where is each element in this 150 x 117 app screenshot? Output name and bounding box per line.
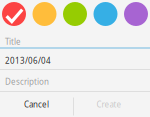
button[interactable]: Blue: [93, 2, 117, 26]
button[interactable]: Orange: [32, 2, 56, 26]
staticText: Cancel: [24, 99, 49, 110]
staticText: 2013/06/04: [5, 55, 51, 66]
button[interactable]: Cancel: [0, 92, 73, 117]
button[interactable]: Title: [0, 26, 150, 49]
button[interactable]: Description: [0, 70, 150, 92]
button[interactable]: Purple: [124, 2, 148, 26]
button[interactable]: Green: [63, 2, 87, 26]
button[interactable]: Red: [2, 2, 26, 26]
staticText: Create: [96, 99, 121, 110]
button[interactable]: 2013/06/04: [0, 49, 150, 70]
staticText: Title: [5, 36, 21, 47]
button[interactable]: Create: [74, 92, 144, 117]
staticText: Description: [5, 76, 49, 87]
